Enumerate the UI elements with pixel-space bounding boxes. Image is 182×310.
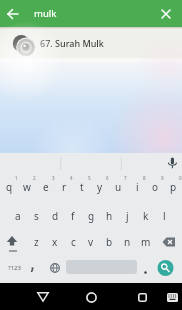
button[interactable] [34, 288, 52, 306]
button[interactable]: g [82, 203, 100, 229]
button[interactable]: a [9, 203, 27, 229]
button[interactable]: f [64, 203, 82, 229]
button[interactable]: x [46, 229, 64, 255]
button[interactable] [5, 6, 21, 22]
staticText: 5 [88, 175, 91, 181]
button[interactable]: b [100, 229, 118, 255]
staticText: mulk [34, 7, 57, 20]
staticText: p [170, 180, 177, 194]
staticText: f [71, 209, 75, 223]
staticText: 1 [15, 175, 18, 181]
button[interactable]: s [27, 203, 45, 229]
button[interactable] [46, 259, 64, 277]
button[interactable] [157, 259, 174, 276]
staticText: s [34, 209, 39, 223]
button[interactable] [133, 288, 151, 306]
staticText: g [88, 209, 95, 223]
staticText: 2 [33, 175, 36, 181]
staticText: r [62, 180, 67, 194]
staticText: j [126, 209, 129, 223]
staticText: y [97, 180, 103, 194]
staticText: 67. Surah Mulk [40, 37, 104, 49]
button[interactable] [158, 6, 174, 22]
button[interactable]: l [155, 203, 173, 229]
button[interactable]: q [0, 174, 18, 200]
button[interactable]: o [146, 174, 164, 200]
button[interactable]: u [109, 174, 127, 200]
button[interactable]: n [118, 229, 136, 255]
button[interactable] [27, 259, 45, 277]
button[interactable] [82, 288, 100, 306]
button[interactable] [137, 259, 155, 277]
button[interactable]: h [100, 203, 118, 229]
staticText: d [52, 209, 59, 223]
staticText: m [141, 235, 151, 249]
staticText: n [124, 235, 131, 249]
button[interactable]: z [27, 229, 45, 255]
staticText: e [43, 180, 49, 194]
button[interactable]: p [164, 174, 182, 200]
staticText: 0 [179, 175, 182, 181]
staticText: 9 [161, 175, 164, 181]
button[interactable]: ?123 [2, 260, 26, 276]
staticText: ?123 [8, 264, 21, 272]
button[interactable]: t [73, 174, 91, 200]
staticText: x [52, 235, 58, 249]
staticText: 8 [143, 175, 146, 181]
staticText: 7 [124, 175, 127, 181]
button[interactable]: v [82, 229, 100, 255]
button[interactable]: j [118, 203, 136, 229]
staticText: z [34, 235, 39, 249]
button[interactable]: e [37, 174, 55, 200]
staticText: h [106, 209, 113, 223]
staticText: 4 [70, 175, 73, 181]
button[interactable]: d [46, 203, 64, 229]
staticText: i [136, 180, 139, 194]
staticText: 6 [106, 175, 109, 181]
staticText: c [71, 235, 76, 249]
button[interactable]: i [128, 174, 146, 200]
button[interactable] [4, 233, 24, 251]
staticText: q [6, 180, 13, 194]
button[interactable]: y [91, 174, 109, 200]
button[interactable]: k [137, 203, 155, 229]
staticText: a [15, 209, 21, 223]
staticText: u [115, 180, 122, 194]
button[interactable]: c [64, 229, 82, 255]
button[interactable]: r [55, 174, 73, 200]
button[interactable]: 67. Surah Mulk [0, 27, 182, 58]
staticText: v [88, 235, 94, 249]
staticText: t [80, 180, 84, 194]
button[interactable] [159, 233, 179, 251]
staticText: 3 [52, 175, 55, 181]
staticText: o [152, 180, 159, 194]
staticText: k [143, 209, 149, 223]
staticText: b [106, 235, 113, 249]
staticText: l [163, 209, 166, 223]
button[interactable]: w [18, 174, 36, 200]
button[interactable]: m [137, 229, 155, 255]
staticText: w [23, 180, 31, 194]
button[interactable] [163, 288, 181, 306]
